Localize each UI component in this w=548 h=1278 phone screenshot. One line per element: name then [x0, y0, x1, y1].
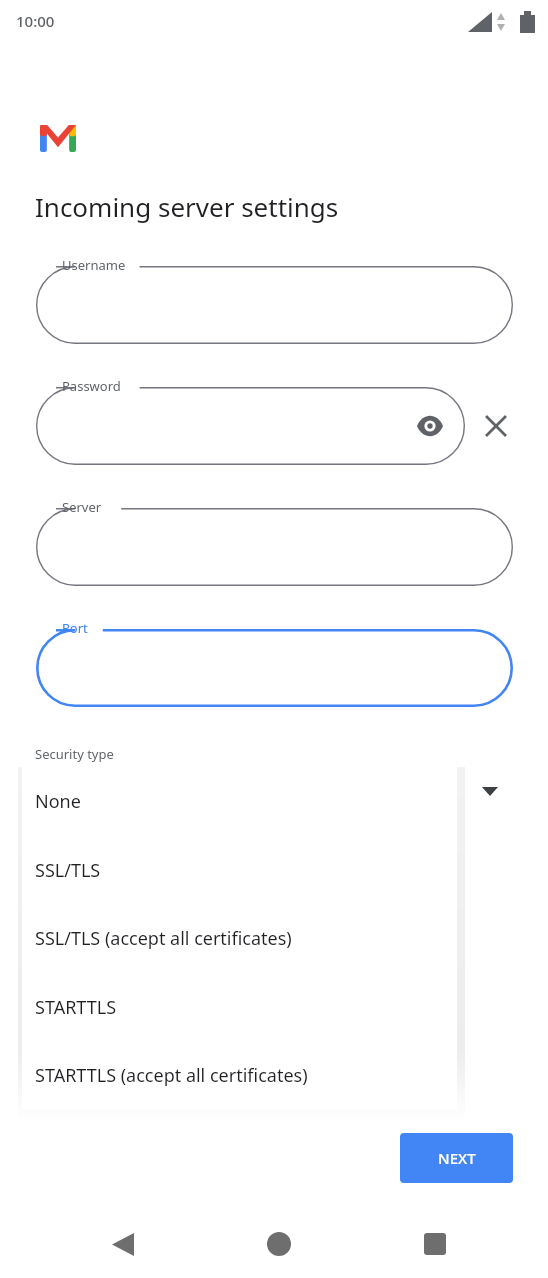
- button[interactable]: STARTTLS: [22, 973, 457, 1041]
- button[interactable]: Server: [36, 508, 513, 586]
- staticText: Username: [62, 256, 126, 274]
- staticText: Incoming server settings: [35, 189, 339, 224]
- staticText: Security type: [35, 745, 114, 763]
- staticText: None: [35, 789, 81, 814]
- button[interactable]: SSL/TLS (accept all certificates): [22, 904, 457, 972]
- staticText: STARTTLS: [35, 995, 117, 1020]
- button[interactable]: STARTTLS (accept all certificates): [22, 1041, 457, 1109]
- button[interactable]: None: [22, 767, 457, 835]
- button[interactable]: Recent apps: [409, 1218, 461, 1270]
- button[interactable]: Port: [36, 629, 513, 707]
- staticText: 10:00: [16, 11, 55, 31]
- button[interactable]: Home: [253, 1218, 305, 1270]
- staticText: SSL/TLS: [35, 858, 101, 883]
- button[interactable]: NEXT: [400, 1133, 513, 1183]
- button[interactable]: Password: [36, 387, 465, 465]
- button[interactable]: Clear password: [474, 404, 518, 448]
- button[interactable]: SSL/TLS: [22, 836, 457, 904]
- staticText: SSL/TLS (accept all certificates): [35, 926, 292, 951]
- button[interactable]: Show password: [409, 405, 451, 447]
- staticText: Server: [62, 498, 102, 516]
- button[interactable]: Username: [36, 266, 513, 344]
- staticText: Password: [62, 377, 121, 395]
- button[interactable]: Back: [96, 1218, 148, 1270]
- staticText: NEXT: [438, 1148, 476, 1168]
- staticText: Port: [62, 619, 88, 637]
- button[interactable]: Open security type dropdown: [471, 772, 509, 810]
- staticText: STARTTLS (accept all certificates): [35, 1063, 308, 1088]
